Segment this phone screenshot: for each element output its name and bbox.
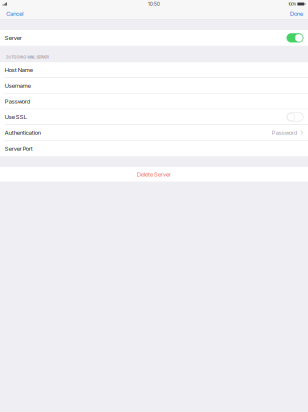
button[interactable]: Done xyxy=(285,8,308,19)
button[interactable]: Delete Server xyxy=(0,167,308,181)
button[interactable]: Authentication xyxy=(0,125,308,141)
staticText: OUTGOING MAIL SERVER xyxy=(6,55,49,59)
staticText: Host Name xyxy=(5,66,33,73)
button[interactable]: Username xyxy=(0,78,308,94)
button[interactable]: Server xyxy=(0,30,308,46)
staticText: Server Port xyxy=(5,145,33,152)
button[interactable]: Password xyxy=(0,94,308,109)
staticText: Server xyxy=(5,34,22,41)
staticText: 100% xyxy=(288,1,296,6)
staticText: Cancel xyxy=(6,10,23,17)
staticText: 10:50 xyxy=(148,1,160,7)
button[interactable]: Server Port xyxy=(0,141,308,156)
staticText: Password xyxy=(272,129,297,136)
button[interactable]: Host Name xyxy=(0,62,308,78)
staticText: Done xyxy=(290,10,303,17)
button[interactable]: Use SSL xyxy=(0,109,308,125)
staticText: Delete Server xyxy=(137,171,171,178)
staticText: Username xyxy=(5,82,31,89)
button[interactable]: Cancel xyxy=(0,8,29,19)
staticText: Password xyxy=(5,98,30,105)
staticText: Use SSL xyxy=(5,113,27,121)
staticText: Authentication xyxy=(5,129,41,136)
